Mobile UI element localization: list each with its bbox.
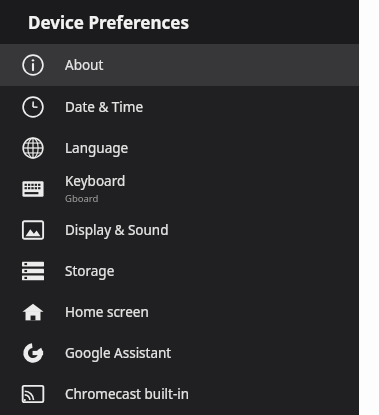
staticText: Keyboard — [65, 172, 126, 190]
button[interactable]: Display & Sound — [0, 209, 359, 250]
button[interactable]: Keyboard — [0, 168, 359, 209]
button[interactable]: About — [0, 44, 359, 86]
button[interactable]: Language — [0, 127, 359, 168]
staticText: About — [65, 56, 104, 74]
staticText: Display & Sound — [65, 221, 169, 239]
staticText: Device Preferences — [28, 11, 189, 34]
button[interactable]: Google Assistant — [0, 332, 359, 373]
staticText: Language — [65, 139, 129, 157]
staticText: Storage — [65, 262, 115, 280]
button[interactable]: Home screen — [0, 291, 359, 332]
button[interactable]: Date & Time — [0, 86, 359, 127]
button[interactable]: Storage — [0, 250, 359, 291]
staticText: Google Assistant — [65, 344, 172, 362]
staticText: Date & Time — [65, 98, 144, 116]
staticText: Home screen — [65, 303, 149, 321]
staticText: Gboard — [65, 192, 99, 205]
staticText: Chromecast built-in — [65, 385, 190, 403]
button[interactable]: Chromecast built-in — [0, 373, 359, 414]
